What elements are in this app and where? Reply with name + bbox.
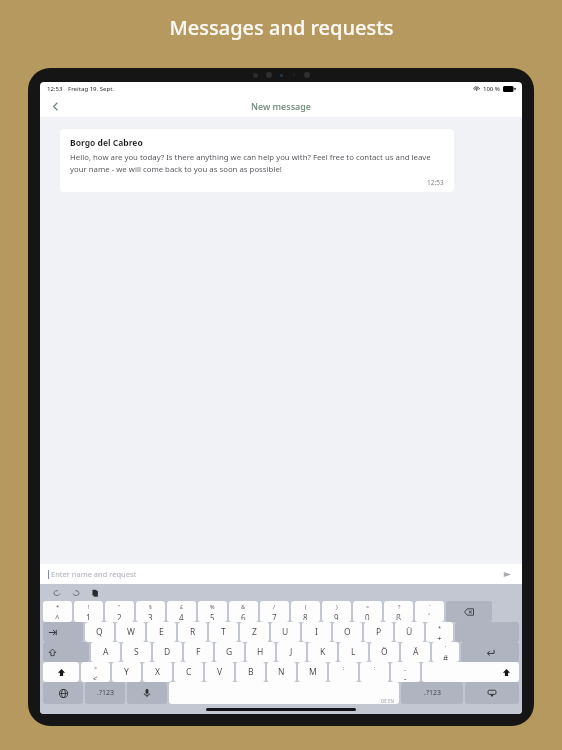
button[interactable]: .?123 (401, 682, 463, 704)
button[interactable]: & (229, 601, 258, 622)
button[interactable]: F (184, 642, 213, 662)
staticText: .?123 (97, 688, 114, 698)
button[interactable]: ! (74, 601, 103, 622)
staticText: : (374, 664, 376, 671)
button[interactable]: ( (291, 601, 320, 622)
staticText: C (186, 666, 192, 678)
button[interactable]: J (277, 642, 306, 662)
staticText: 0 (365, 612, 370, 620)
staticText: Freitag 19. Sept. (68, 85, 115, 93)
button[interactable]: N (267, 662, 296, 682)
staticText: ; (343, 664, 345, 671)
staticText: 5 (210, 612, 215, 620)
button[interactable]: K (308, 642, 337, 662)
button[interactable]: T (209, 622, 238, 642)
button[interactable]: L (339, 642, 368, 662)
button[interactable]: A (91, 642, 120, 662)
staticText: Enter name and request (51, 569, 137, 579)
button[interactable] (43, 662, 79, 682)
staticText: % (210, 603, 215, 610)
button[interactable]: S (122, 642, 151, 662)
button[interactable] (43, 642, 89, 662)
staticText: U (282, 626, 289, 638)
button[interactable]: / (260, 601, 289, 622)
button[interactable]: W (116, 622, 145, 642)
button[interactable]: : (360, 662, 389, 682)
button[interactable]: I (302, 622, 331, 642)
staticText: Ö (381, 646, 388, 658)
button[interactable]: E (147, 622, 176, 642)
button[interactable]: £ (167, 601, 196, 622)
button[interactable]: M (298, 662, 327, 682)
button[interactable]: Back (46, 97, 64, 115)
button[interactable]: D (153, 642, 182, 662)
staticText: < (93, 673, 98, 680)
button[interactable]: _ (391, 662, 420, 682)
staticText: § (149, 603, 152, 610)
button[interactable]: * (426, 622, 453, 642)
staticText: N (278, 666, 285, 678)
button[interactable]: O (333, 622, 362, 642)
button[interactable]: C (174, 662, 203, 682)
button[interactable] (446, 601, 492, 622)
button[interactable]: U (271, 622, 300, 642)
staticText: E (159, 626, 164, 638)
button[interactable]: Return (461, 642, 519, 662)
button[interactable]: = (353, 601, 382, 622)
button[interactable]: V (205, 662, 234, 682)
button[interactable]: H (246, 642, 275, 662)
staticText: 2 (117, 612, 122, 620)
button[interactable] (43, 622, 83, 642)
button[interactable]: Send (500, 567, 514, 581)
staticText: Ü (406, 626, 413, 638)
staticText: L (351, 646, 356, 658)
staticText: A (103, 646, 109, 658)
staticText: # (443, 653, 449, 660)
staticText: / (273, 603, 276, 610)
button[interactable]: Q (85, 622, 114, 642)
button[interactable]: Enter name and request (48, 564, 514, 584)
staticText: Ä (413, 646, 419, 658)
button[interactable]: Hide keyboard (465, 682, 519, 704)
button[interactable]: ; (329, 662, 358, 682)
staticText: DE EN (381, 698, 394, 704)
button[interactable]: ' (432, 642, 459, 662)
button[interactable]: Y (112, 662, 141, 682)
staticText: ' (445, 644, 447, 651)
staticText: 3 (148, 612, 153, 620)
button[interactable]: * (43, 601, 72, 622)
staticText: 9 (334, 612, 339, 620)
button[interactable]: " (105, 601, 134, 622)
button[interactable]: Undo (50, 586, 63, 599)
button[interactable]: P (364, 622, 393, 642)
button[interactable]: § (136, 601, 165, 622)
button[interactable]: Change keyboard language (43, 682, 83, 704)
button[interactable]: Z (240, 622, 269, 642)
button[interactable]: B (236, 662, 265, 682)
staticText: O (344, 626, 351, 638)
button[interactable]: Ü (395, 622, 424, 642)
staticText: * (438, 624, 442, 631)
button[interactable]: G (215, 642, 244, 662)
staticText: ´ (428, 612, 431, 620)
button[interactable]: ) (322, 601, 351, 622)
staticText: ` (429, 603, 431, 610)
button[interactable]: > (81, 662, 110, 682)
button[interactable]: Redo (69, 586, 82, 599)
button[interactable]: R (178, 622, 207, 642)
button[interactable]: ? (384, 601, 413, 622)
button[interactable]: Space (169, 682, 399, 704)
button[interactable]: X (143, 662, 172, 682)
button[interactable]: ` (415, 601, 444, 622)
button[interactable]: .?123 (85, 682, 125, 704)
staticText: Messages and requests (169, 14, 394, 41)
button[interactable]: Ö (370, 642, 399, 662)
button[interactable]: Shift (422, 662, 519, 682)
button[interactable]: Voice input (127, 682, 167, 704)
staticText: ) (336, 603, 338, 610)
button[interactable]: % (198, 601, 227, 622)
button[interactable]: Ä (401, 642, 430, 662)
button[interactable]: Paste (88, 586, 101, 599)
